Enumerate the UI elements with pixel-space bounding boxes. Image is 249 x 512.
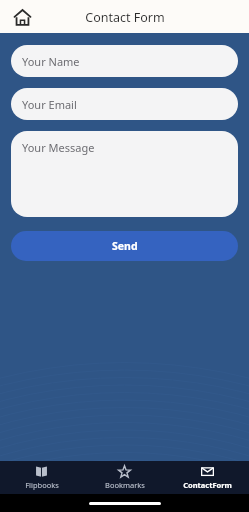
button[interactable]: Your Message	[11, 131, 238, 217]
staticText: Bookmarks	[105, 480, 145, 490]
button[interactable]: ContactForm	[166, 462, 249, 493]
staticText: Contact Form	[85, 9, 165, 26]
button[interactable]: Home	[9, 4, 35, 30]
button[interactable]: Send	[11, 231, 238, 261]
staticText: Send	[112, 239, 138, 253]
staticText: Your Message	[22, 140, 95, 155]
button[interactable]: Flipbooks	[0, 462, 83, 493]
staticText: Flipbooks	[25, 480, 59, 490]
button[interactable]: Your Email	[11, 88, 238, 120]
staticText: Your Email	[22, 97, 77, 112]
staticText: Your Name	[22, 54, 80, 69]
button[interactable]: Bookmarks	[83, 462, 166, 493]
staticText: ContactForm	[183, 480, 232, 490]
button[interactable]: Your Name	[11, 45, 238, 77]
